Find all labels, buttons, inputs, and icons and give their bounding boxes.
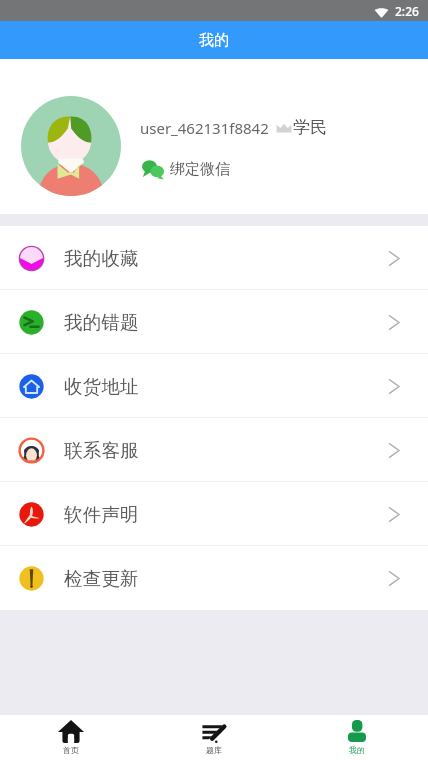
staticText: user_462131f8842: [140, 118, 269, 138]
button[interactable]: 我的收藏: [0, 226, 428, 290]
staticText: 我的: [349, 745, 365, 755]
button[interactable]: 题库: [142, 715, 285, 760]
staticText: 检查更新: [64, 567, 139, 590]
button[interactable]: 收货地址: [0, 354, 428, 418]
staticText: 联系客服: [64, 439, 139, 462]
button[interactable]: Avatar: [21, 96, 121, 196]
staticText: 学民: [293, 117, 327, 138]
staticText: 绑定微信: [170, 160, 230, 179]
other: Wi-Fi: [374, 4, 389, 19]
staticText: 我的错题: [64, 311, 139, 334]
button[interactable]: 软件声明: [0, 482, 428, 546]
button[interactable]: 绑定微信: [142, 158, 230, 180]
staticText: 首页: [63, 745, 79, 755]
button[interactable]: 联系客服: [0, 418, 428, 482]
staticText: 题库: [206, 745, 222, 755]
staticText: 我的收藏: [64, 247, 139, 270]
staticText: 2:26: [395, 3, 419, 19]
button[interactable]: 检查更新: [0, 546, 428, 610]
staticText: 我的: [199, 31, 229, 50]
button[interactable]: 首页: [0, 715, 142, 760]
button[interactable]: 我的错题: [0, 290, 428, 354]
staticText: 收货地址: [64, 375, 139, 398]
button[interactable]: 我的: [285, 715, 428, 760]
staticText: 软件声明: [64, 503, 139, 526]
